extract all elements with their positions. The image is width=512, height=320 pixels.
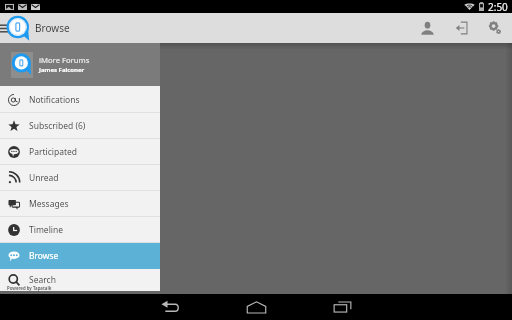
staticText: Powered by Tapatalk — [7, 285, 52, 291]
button[interactable]: Notifications — [0, 87, 160, 113]
button[interactable]: Account — [410, 13, 444, 43]
staticText: iMore Forums — [39, 55, 90, 65]
button[interactable]: Subscribed (6) — [0, 113, 160, 139]
button[interactable]: Log out — [444, 13, 478, 43]
staticText: Timeline — [29, 224, 64, 236]
staticText: Notifications — [29, 94, 80, 106]
staticText: Participated — [29, 146, 78, 158]
button[interactable]: Messages — [0, 191, 160, 217]
staticText: Messages — [29, 198, 69, 210]
staticText: Browse — [35, 21, 70, 35]
button[interactable]: Open navigation drawer — [0, 17, 13, 39]
button[interactable]: Timeline — [0, 217, 160, 243]
staticText: Browse — [29, 250, 59, 262]
button[interactable]: Recent apps — [299, 294, 385, 320]
staticText: Search — [29, 274, 56, 286]
button[interactable]: Browse — [0, 243, 160, 269]
button[interactable]: iMore Forums — [0, 43, 160, 86]
button[interactable]: Settings — [478, 13, 512, 43]
staticText: Unread — [29, 172, 59, 184]
button[interactable]: Participated — [0, 139, 160, 165]
staticText: 2:50 — [488, 0, 508, 13]
staticText: James Falconer — [39, 66, 85, 74]
button[interactable]: Back — [127, 294, 213, 320]
button[interactable]: Unread — [0, 165, 160, 191]
button[interactable]: Home — [213, 294, 299, 320]
staticText: Subscribed (6) — [29, 120, 86, 132]
